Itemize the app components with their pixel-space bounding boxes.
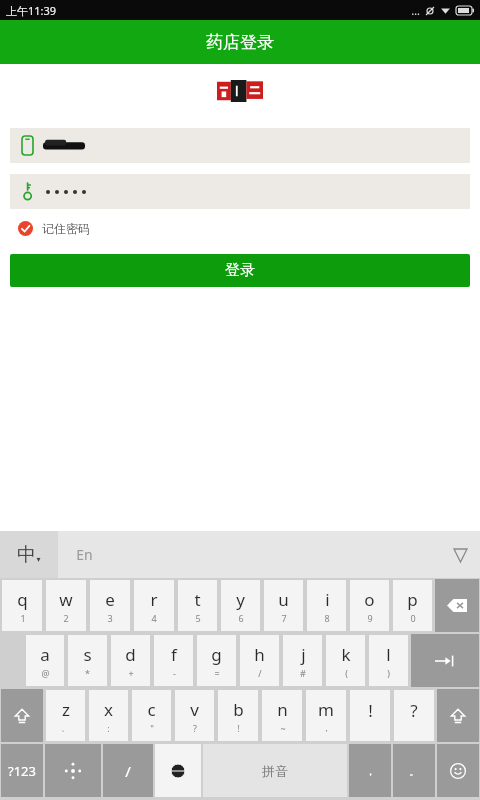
staticText: ! bbox=[368, 699, 373, 722]
button[interactable]: Change language bbox=[155, 744, 201, 797]
staticText: 6 bbox=[238, 612, 244, 624]
button[interactable]: 拼音 bbox=[203, 744, 347, 797]
button[interactable]: l bbox=[369, 635, 408, 686]
button[interactable]: r bbox=[134, 580, 174, 631]
button[interactable]: ? bbox=[394, 690, 434, 741]
button[interactable]: o bbox=[350, 580, 389, 631]
button[interactable]: Enter bbox=[411, 634, 479, 687]
staticText: # bbox=[300, 667, 306, 679]
staticText: 登录 bbox=[225, 261, 255, 280]
button[interactable]: Shift bbox=[437, 689, 479, 742]
button[interactable]: ， bbox=[349, 744, 391, 797]
button[interactable]: j bbox=[283, 635, 322, 686]
staticText: 上午11:39 bbox=[6, 3, 57, 18]
button[interactable]: g bbox=[197, 635, 236, 686]
button[interactable]: e bbox=[90, 580, 130, 631]
button[interactable]: 记住密码 bbox=[18, 221, 90, 236]
button[interactable] bbox=[10, 128, 470, 163]
button[interactable]: w bbox=[46, 580, 86, 631]
button[interactable]: h bbox=[240, 635, 279, 686]
staticText: y bbox=[236, 588, 245, 611]
button[interactable]: c bbox=[132, 690, 171, 741]
button[interactable]: Backspace bbox=[435, 579, 479, 632]
button[interactable]: 。 bbox=[393, 744, 435, 797]
staticText: u bbox=[278, 588, 289, 611]
staticText: + bbox=[128, 667, 134, 679]
staticText: ( bbox=[345, 667, 348, 679]
staticText: k bbox=[341, 643, 351, 666]
staticText: 、 bbox=[61, 722, 70, 733]
button[interactable]: x bbox=[89, 690, 128, 741]
staticText: 7 bbox=[281, 612, 287, 624]
button[interactable]: m bbox=[306, 690, 346, 741]
button[interactable]: 中 bbox=[0, 531, 58, 578]
button[interactable]: b bbox=[218, 690, 258, 741]
staticText: w bbox=[59, 588, 73, 611]
staticText: 3 bbox=[107, 612, 113, 624]
button[interactable]: Hide keyboard bbox=[440, 535, 480, 575]
button[interactable]: / bbox=[103, 744, 153, 797]
staticText: ) bbox=[387, 667, 390, 679]
staticText: ， bbox=[322, 722, 331, 733]
staticText: ▾ bbox=[36, 555, 41, 564]
staticText: 5 bbox=[195, 612, 201, 624]
staticText: 。 bbox=[409, 764, 420, 778]
staticText: r bbox=[150, 588, 158, 611]
button[interactable]: Shift bbox=[1, 689, 43, 742]
button[interactable]: a bbox=[26, 635, 64, 686]
staticText: 8 bbox=[324, 612, 330, 624]
staticText: c bbox=[147, 698, 156, 721]
button[interactable]: f bbox=[154, 635, 193, 686]
button[interactable]: Emoji bbox=[437, 744, 479, 797]
staticText: " bbox=[150, 722, 154, 734]
staticText: ! bbox=[237, 722, 240, 734]
staticText: 药店登录 bbox=[206, 32, 274, 53]
staticText: ?123 bbox=[8, 762, 36, 780]
button[interactable]: Move cursor bbox=[45, 744, 101, 797]
button[interactable]: y bbox=[221, 580, 260, 631]
button[interactable]: p bbox=[393, 580, 432, 631]
button[interactable]: z bbox=[46, 690, 85, 741]
staticText: j bbox=[301, 643, 306, 666]
button[interactable]: v bbox=[175, 690, 214, 741]
staticText: 中 bbox=[17, 543, 36, 567]
staticText: d bbox=[125, 643, 136, 666]
staticText: z bbox=[62, 698, 70, 721]
staticText: - bbox=[173, 667, 176, 679]
staticText: 拼音 bbox=[262, 763, 288, 779]
staticText: ， bbox=[365, 764, 376, 778]
button[interactable]: n bbox=[262, 690, 302, 741]
staticText: b bbox=[233, 698, 244, 721]
staticText: x bbox=[104, 698, 113, 721]
staticText: p bbox=[407, 588, 418, 611]
staticText: g bbox=[211, 643, 222, 666]
button[interactable]: u bbox=[264, 580, 303, 631]
staticText: o bbox=[364, 588, 375, 611]
button[interactable]: k bbox=[326, 635, 365, 686]
staticText: e bbox=[105, 588, 115, 611]
staticText: v bbox=[190, 698, 199, 721]
button[interactable]: ! bbox=[350, 690, 390, 741]
button[interactable]: q bbox=[2, 580, 42, 631]
button[interactable]: i bbox=[307, 580, 346, 631]
staticText: 2 bbox=[63, 612, 69, 624]
staticText: = bbox=[214, 667, 220, 679]
staticText: a bbox=[40, 643, 50, 666]
button[interactable] bbox=[10, 174, 470, 209]
button[interactable]: En bbox=[58, 531, 93, 578]
staticText: / bbox=[258, 667, 262, 679]
button[interactable]: t bbox=[178, 580, 217, 631]
staticText: En bbox=[76, 545, 93, 564]
staticText: 4 bbox=[151, 612, 157, 624]
staticText: f bbox=[171, 643, 177, 666]
staticText: l bbox=[386, 643, 391, 666]
button[interactable]: 登录 bbox=[10, 254, 470, 287]
staticText: 9 bbox=[367, 612, 373, 624]
staticText: / bbox=[125, 761, 131, 781]
button[interactable]: s bbox=[68, 635, 107, 686]
staticText: 记住密码 bbox=[42, 221, 90, 236]
staticText: ~ bbox=[280, 722, 286, 734]
staticText: * bbox=[85, 667, 90, 679]
button[interactable]: d bbox=[111, 635, 150, 686]
button[interactable]: ?123 bbox=[1, 744, 43, 797]
